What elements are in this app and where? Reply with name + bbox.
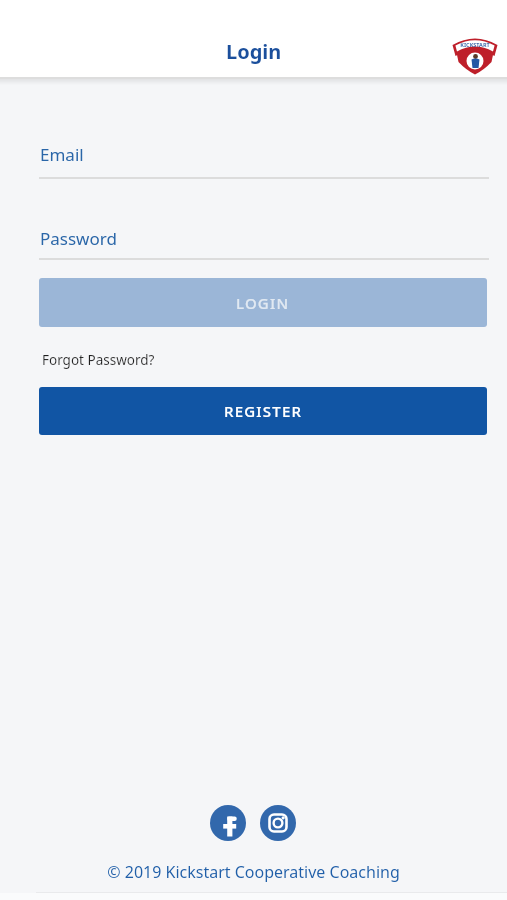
button[interactable]: REGISTER xyxy=(39,387,487,435)
staticText: Password xyxy=(40,227,117,250)
button[interactable]: LOGIN xyxy=(39,278,487,327)
staticText: Forgot Password? xyxy=(42,351,155,369)
staticText: KICKSTART xyxy=(452,41,498,48)
staticText: © 2019 Kickstart Cooperative Coaching xyxy=(0,861,507,883)
button[interactable]: Forgot Password? xyxy=(42,351,155,369)
staticText: Email xyxy=(40,143,84,166)
staticText: REGISTER xyxy=(224,401,303,421)
button[interactable]: Password xyxy=(39,220,489,260)
button[interactable]: Email xyxy=(39,135,489,179)
staticText: Login xyxy=(226,38,282,65)
button[interactable] xyxy=(210,805,246,841)
button[interactable] xyxy=(260,805,296,841)
staticText: LOGIN xyxy=(236,293,290,313)
